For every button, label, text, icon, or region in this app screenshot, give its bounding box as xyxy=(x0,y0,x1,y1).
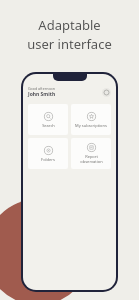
button[interactable]: Search xyxy=(28,104,68,135)
staticText: Adaptable xyxy=(38,16,101,34)
button[interactable]: Report observation xyxy=(71,138,111,169)
button[interactable]: Folders xyxy=(28,138,68,169)
staticText: Folders xyxy=(41,157,55,162)
button[interactable]: My subscriptions xyxy=(71,104,111,135)
staticText: John Smith xyxy=(28,91,56,98)
staticText: user interface xyxy=(27,35,112,53)
staticText: Report observation xyxy=(80,154,103,164)
staticText: My subscriptions xyxy=(75,123,107,128)
staticText: Search xyxy=(42,123,55,128)
staticText: Good afternoon xyxy=(28,86,55,91)
button[interactable]: Profile settings xyxy=(102,88,111,97)
